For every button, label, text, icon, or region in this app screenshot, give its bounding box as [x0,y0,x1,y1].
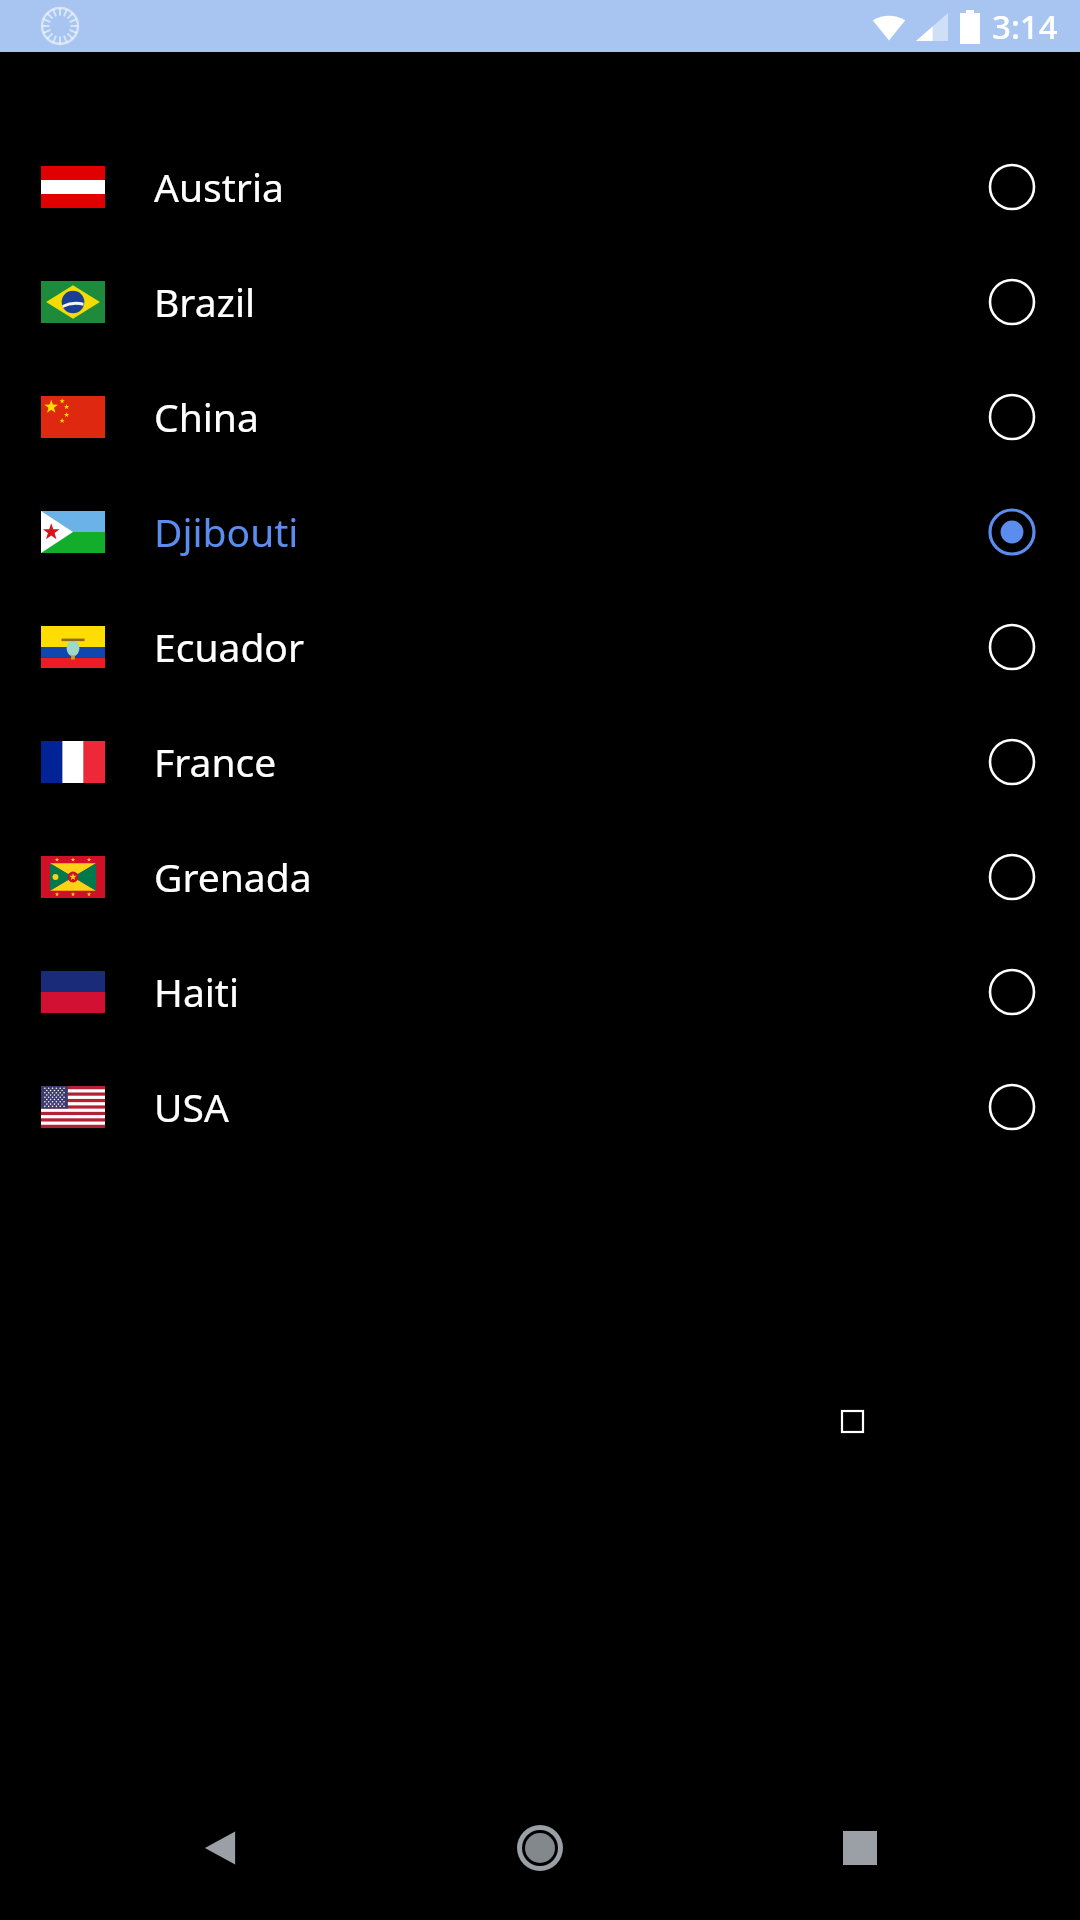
button[interactable]: China [0,359,1080,474]
button[interactable]: Back [180,1808,260,1888]
button[interactable]: Grenada [0,819,1080,934]
staticText: Brazil [154,275,256,328]
staticText: Grenada [154,850,312,903]
button[interactable]: Ecuador [0,589,1080,704]
other: Select USA [984,1079,1040,1135]
button[interactable]: Recents [820,1808,900,1888]
other: Select Ecuador [984,619,1040,675]
button[interactable]: USA [0,1049,1080,1164]
other: Select Brazil [984,274,1040,330]
other: Select Grenada [984,849,1040,905]
staticText: China [154,390,259,443]
staticText: 3:14 [992,4,1058,49]
button[interactable]: Brazil [0,244,1080,359]
staticText: Haiti [154,965,239,1018]
button[interactable]: Austria [0,129,1080,244]
staticText: USA [154,1080,229,1133]
staticText: Djibouti [154,505,299,558]
staticText: Ecuador [154,620,305,673]
button[interactable]: Home [496,1804,584,1892]
other: Select Haiti [984,964,1040,1020]
other: Select Djibouti [984,504,1040,560]
button[interactable]: France [0,704,1080,819]
button[interactable]: Haiti [0,934,1080,1049]
other: Select France [984,734,1040,790]
other: Select China [984,389,1040,445]
button[interactable]: Djibouti [0,474,1080,589]
other: Select Austria [984,159,1040,215]
staticText: Austria [154,160,284,213]
staticText: France [154,735,277,788]
